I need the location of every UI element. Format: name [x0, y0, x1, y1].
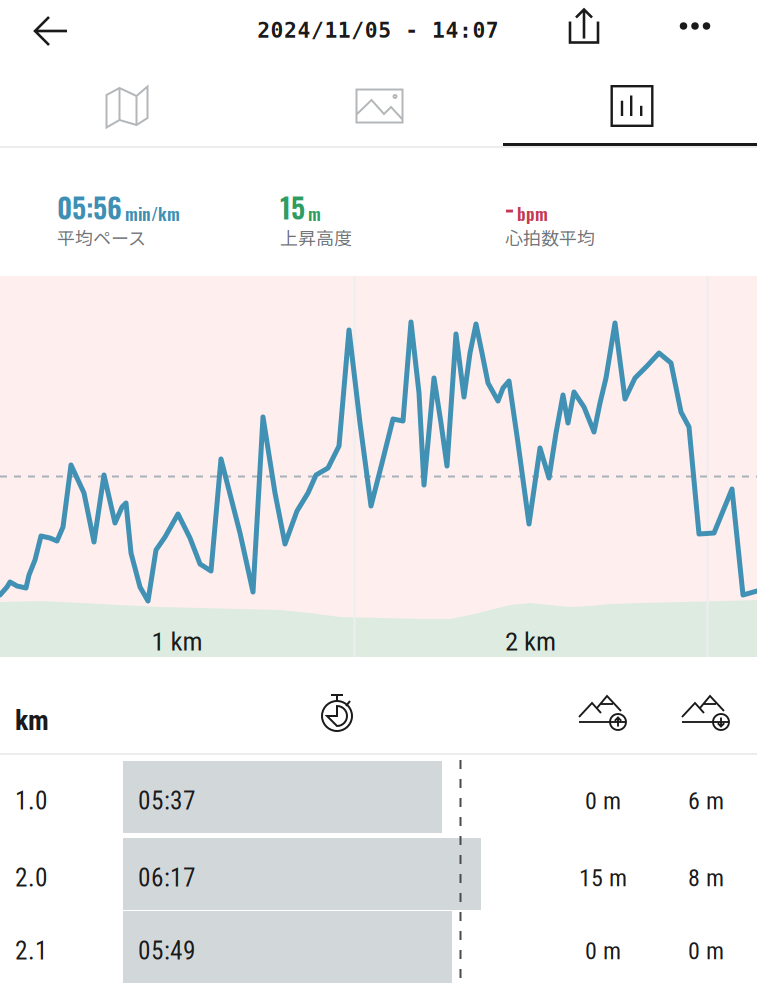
- staticText: 0 m: [688, 937, 724, 965]
- staticText: 2.1: [15, 936, 48, 966]
- staticText: 6 m: [688, 787, 724, 815]
- staticText: 平均ペース: [57, 224, 146, 250]
- staticText: 8 m: [688, 864, 724, 892]
- staticText: km: [15, 704, 49, 737]
- staticText: 05:56: [57, 186, 122, 227]
- staticText: 心拍数平均: [505, 224, 595, 250]
- staticText: 05:37: [138, 786, 196, 816]
- staticText: bpm: [517, 200, 548, 226]
- button[interactable]: Share: [551, 6, 617, 46]
- staticText: 05:49: [138, 936, 196, 966]
- staticText: 2.0: [15, 863, 48, 893]
- staticText: 1.0: [15, 786, 48, 816]
- staticText: min/km: [125, 200, 180, 226]
- staticText: 15: [280, 186, 305, 227]
- button[interactable]: Photos: [252, 62, 503, 146]
- staticText: 15 m: [579, 864, 627, 892]
- staticText: 06:17: [138, 863, 196, 893]
- button[interactable]: More options: [662, 9, 728, 43]
- button[interactable]: Map: [0, 62, 252, 146]
- staticText: -: [505, 186, 514, 227]
- staticText: 2 km: [505, 626, 556, 657]
- staticText: 1 km: [151, 626, 202, 657]
- button[interactable]: Charts: [503, 62, 757, 146]
- staticText: 0 m: [585, 937, 621, 965]
- staticText: 0 m: [585, 787, 621, 815]
- button[interactable]: Back: [19, 2, 83, 60]
- staticText: 2024/11/05 - 14:07: [257, 18, 499, 43]
- staticText: m: [308, 200, 321, 226]
- staticText: 上昇高度: [280, 224, 352, 250]
